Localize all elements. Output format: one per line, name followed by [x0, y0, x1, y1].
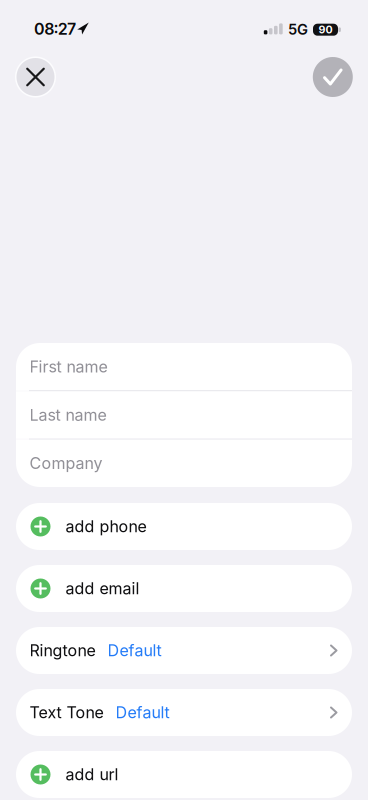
- staticText: add email: [65, 579, 139, 598]
- button[interactable]: Text Tone: [16, 689, 352, 736]
- button[interactable]: add phone: [16, 503, 352, 550]
- staticText: add url: [65, 765, 118, 784]
- staticText: Text Tone: [29, 703, 103, 722]
- staticText: Default: [115, 703, 169, 722]
- staticText: add phone: [65, 517, 146, 536]
- button[interactable]: add email: [16, 565, 352, 612]
- staticText: 5G: [288, 21, 308, 38]
- staticText: First name: [29, 357, 107, 376]
- staticText: Last name: [29, 406, 106, 424]
- button[interactable]: Last name: [16, 391, 352, 439]
- staticText: 08:27: [34, 20, 76, 38]
- staticText: 90: [318, 23, 332, 36]
- button[interactable]: add url: [16, 751, 352, 798]
- button[interactable]: First name: [16, 343, 352, 390]
- staticText: Default: [107, 641, 161, 660]
- button[interactable]: [313, 57, 353, 97]
- button[interactable]: Ringtone: [16, 627, 352, 674]
- staticText: Ringtone: [29, 641, 95, 660]
- button[interactable]: Company: [16, 439, 352, 487]
- button[interactable]: [15, 56, 56, 97]
- staticText: Company: [29, 454, 102, 473]
